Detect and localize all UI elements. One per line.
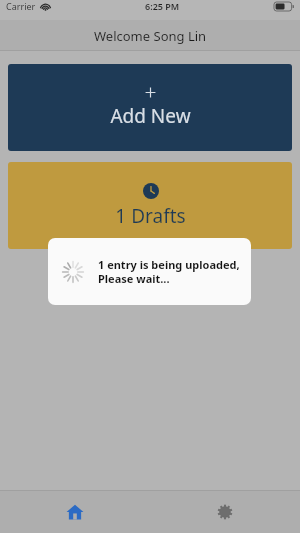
button[interactable]: Settings	[150, 491, 300, 533]
button[interactable]: 1 Drafts	[8, 162, 292, 249]
staticText: 1 entry is being uploaded, Please wait..…	[98, 257, 241, 286]
staticText: Welcome Song Lin	[94, 27, 207, 45]
staticText: 6:25 PM	[145, 0, 180, 12]
staticText: Carrier	[6, 0, 36, 12]
button[interactable]: Home	[0, 491, 150, 533]
button[interactable]: Add New	[8, 64, 292, 151]
staticText: 1 Drafts	[115, 203, 186, 229]
staticText: Add New	[110, 103, 191, 129]
